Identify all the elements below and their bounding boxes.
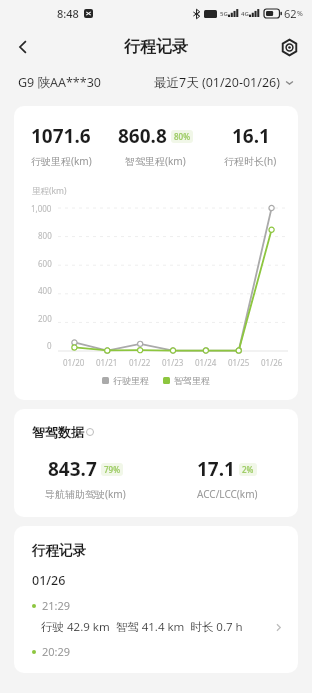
staticText: 400: [38, 285, 52, 296]
staticText: 行驶 42.9 km 智驾 41.4 km 时长 0.7 h: [41, 619, 243, 635]
staticText: 21:29: [42, 598, 71, 613]
staticText: 79%: [104, 464, 120, 475]
staticText: 8:48: [57, 6, 79, 21]
staticText: 600: [38, 258, 52, 269]
staticText: 01/25: [228, 357, 250, 368]
staticText: 01/26: [32, 572, 66, 589]
staticText: 行程记录: [124, 37, 188, 57]
staticText: 01/26: [261, 357, 283, 368]
button[interactable]: G9 陕AA***30: [18, 74, 101, 91]
staticText: 01/23: [162, 357, 184, 368]
staticText: 1071.6: [31, 123, 91, 149]
staticText: 800: [38, 230, 52, 241]
staticText: 80%: [174, 131, 190, 142]
button[interactable]: Info: [86, 428, 94, 436]
button[interactable]: Settings: [272, 30, 306, 64]
staticText: 20:29: [42, 644, 71, 659]
staticText: 01/22: [129, 357, 151, 368]
staticText: 200: [38, 313, 52, 324]
staticText: 62: [284, 6, 297, 21]
button[interactable]: 最近7天 (01/20-01/26): [154, 74, 294, 91]
button[interactable]: 21:29: [14, 598, 298, 635]
staticText: 16.1: [232, 123, 270, 149]
staticText: 行驶里程(km): [31, 154, 92, 168]
staticText: 5G: [220, 10, 228, 18]
staticText: 01/20: [63, 357, 85, 368]
staticText: 4G: [241, 10, 249, 18]
staticText: 860.8: [118, 123, 167, 149]
staticText: G9 陕AA***30: [18, 74, 101, 91]
staticText: 行驶里程: [113, 375, 149, 386]
button[interactable]: Back: [6, 30, 40, 64]
staticText: 2%: [242, 464, 254, 475]
staticText: 智驾里程: [174, 375, 210, 386]
staticText: 843.7: [48, 456, 97, 482]
staticText: 智驾数据: [32, 424, 84, 440]
staticText: %: [297, 9, 303, 19]
staticText: 17.1: [197, 456, 235, 482]
staticText: 01/21: [96, 357, 118, 368]
staticText: 01/24: [195, 357, 217, 368]
staticText: 行程记录: [32, 542, 86, 559]
staticText: 0: [47, 340, 52, 351]
staticText: 里程(km): [32, 185, 67, 197]
staticText: 行程时长(h): [224, 154, 277, 168]
staticText: 导航辅助驾驶(km): [45, 487, 126, 501]
staticText: 最近7天 (01/20-01/26): [154, 74, 280, 91]
staticText: 智驾里程(km): [125, 154, 186, 168]
staticText: ACC/LCC(km): [197, 487, 258, 501]
staticText: 1,000: [31, 203, 52, 214]
